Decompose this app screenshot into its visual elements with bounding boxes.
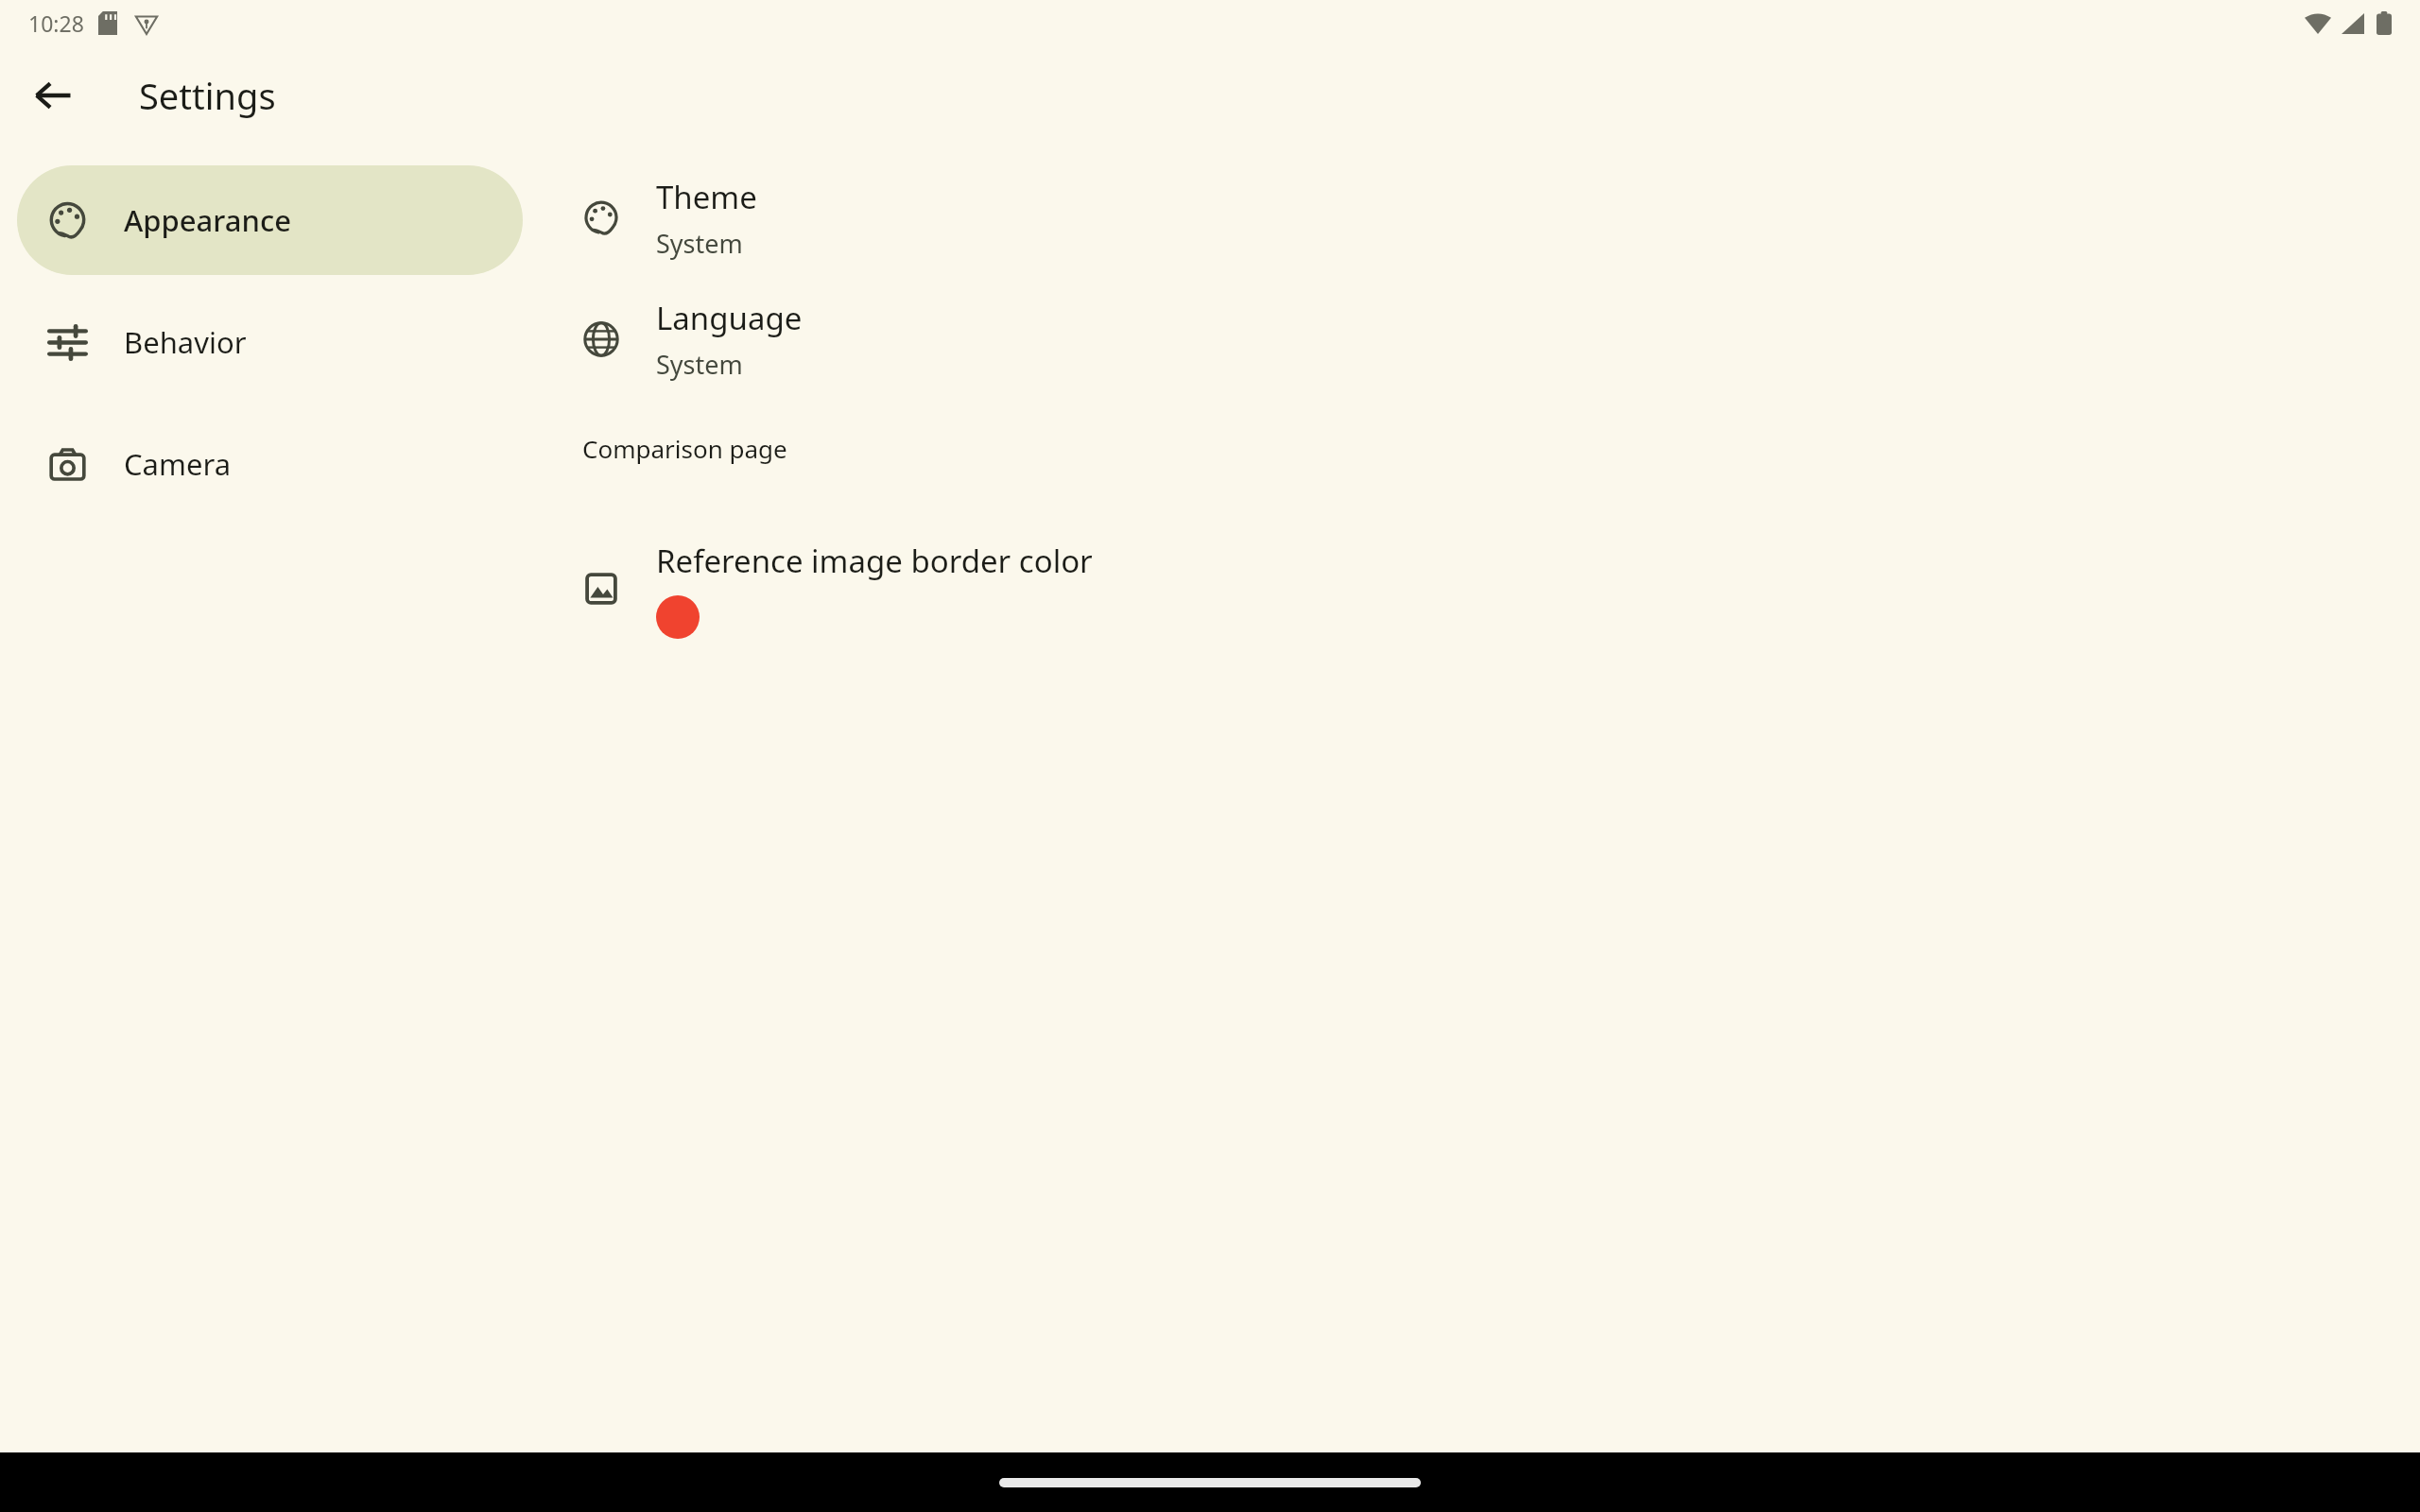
- button[interactable]: Language: [582, 292, 2420, 387]
- staticText: Settings: [139, 71, 276, 120]
- button[interactable]: Reference image border color: [582, 527, 2420, 650]
- staticText: Language: [656, 297, 803, 339]
- button[interactable]: Behavior: [17, 287, 523, 397]
- staticText: System: [656, 347, 743, 382]
- button[interactable]: Camera: [17, 409, 523, 519]
- button[interactable]: Appearance: [17, 165, 523, 275]
- staticText: Camera: [124, 444, 232, 484]
- staticText: Theme: [656, 176, 757, 218]
- button[interactable]: Theme: [582, 171, 2420, 266]
- staticText: 10:28: [28, 9, 84, 38]
- button[interactable]: Back: [17, 60, 89, 131]
- staticText: System: [656, 226, 743, 261]
- staticText: Reference image border color: [656, 540, 1093, 582]
- staticText: Comparison page: [582, 432, 787, 465]
- staticText: Appearance: [124, 200, 291, 240]
- staticText: Behavior: [124, 322, 247, 362]
